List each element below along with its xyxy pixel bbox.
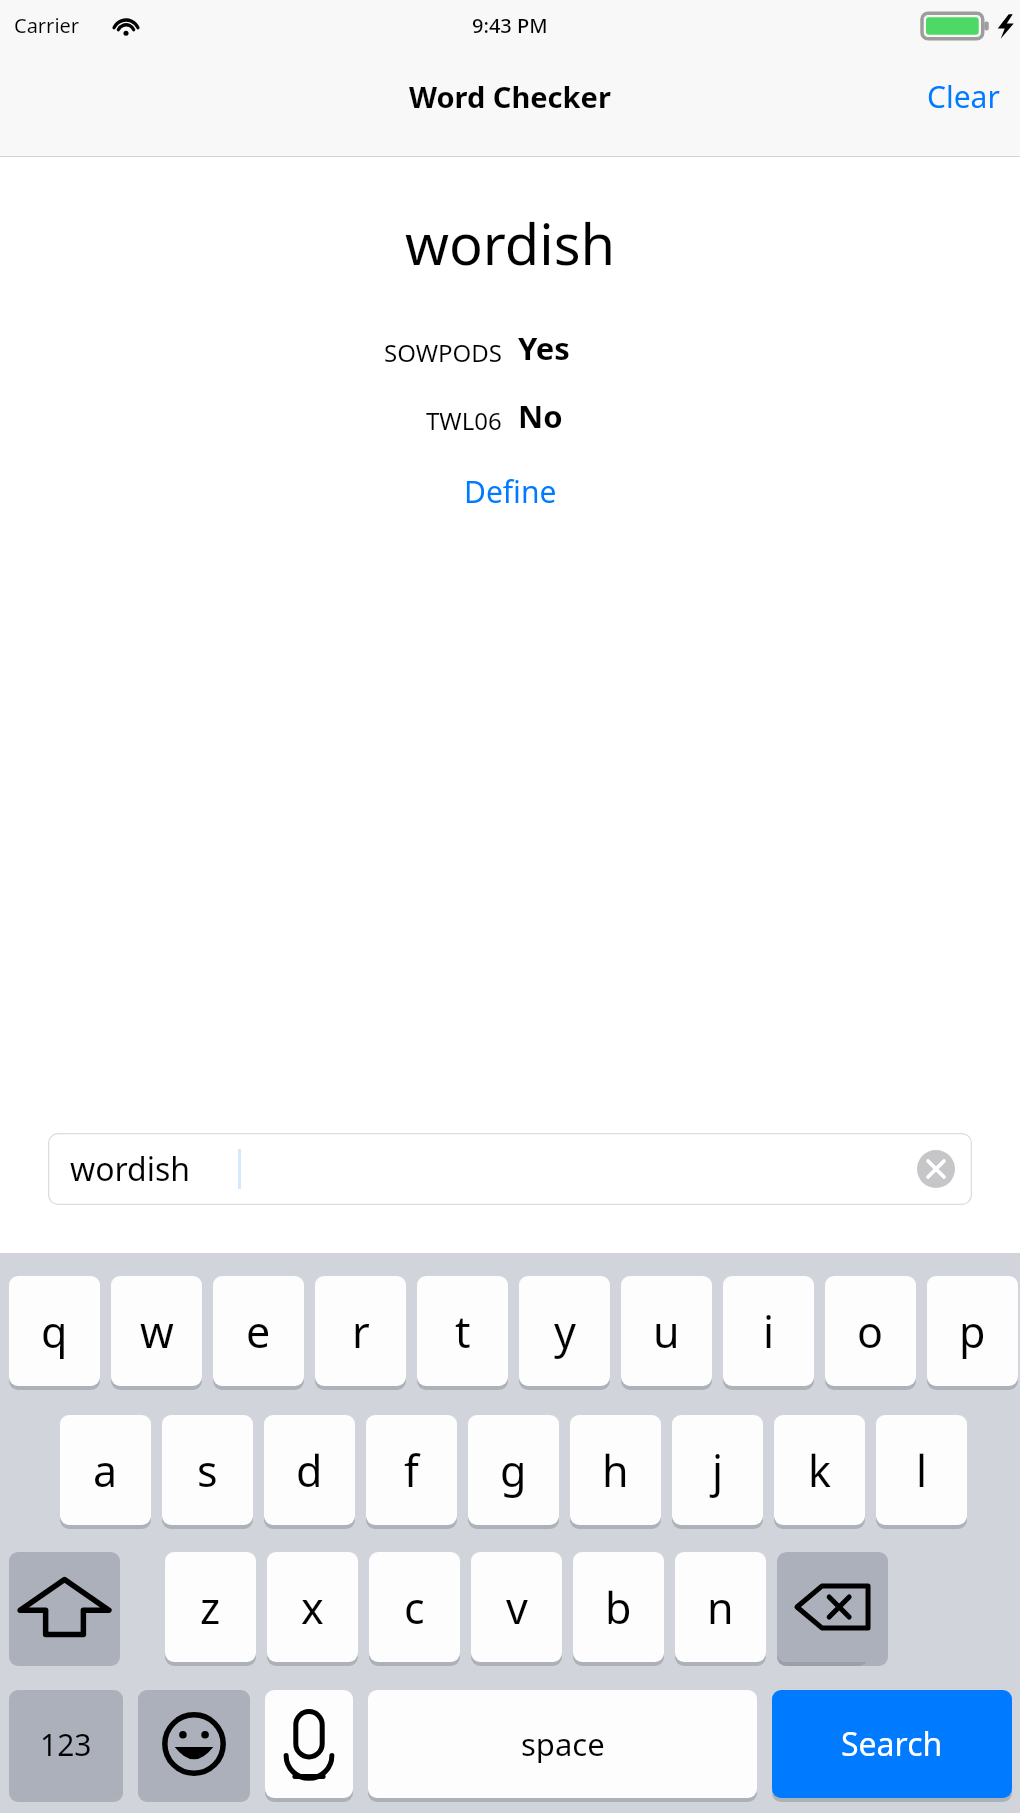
button[interactable]: Dictate (265, 1690, 353, 1798)
staticText: y (554, 1302, 576, 1361)
button[interactable]: Clear text (916, 1149, 956, 1189)
button[interactable]: 123 (9, 1690, 123, 1798)
staticText: Define (464, 471, 557, 512)
staticText: o (857, 1302, 884, 1361)
button[interactable]: q (9, 1276, 100, 1386)
staticText: x (301, 1578, 324, 1637)
staticText: m (802, 1578, 843, 1637)
staticText: 123 (40, 1724, 92, 1765)
staticText: r (352, 1302, 370, 1361)
button[interactable]: e (213, 1276, 304, 1386)
button[interactable]: v (471, 1552, 562, 1662)
button[interactable]: Backspace (777, 1552, 888, 1662)
staticText: t (455, 1302, 471, 1361)
staticText: b (605, 1578, 632, 1637)
button[interactable]: g (468, 1415, 559, 1525)
button[interactable]: t (417, 1276, 508, 1386)
button[interactable]: n (675, 1552, 766, 1662)
staticText: wordish (0, 205, 1020, 281)
staticText: Word Checker (409, 77, 611, 116)
staticText: f (404, 1441, 419, 1500)
staticText: l (916, 1441, 928, 1500)
button[interactable]: j (672, 1415, 763, 1525)
staticText: No (518, 395, 563, 437)
staticText: n (707, 1578, 734, 1637)
staticText: i (763, 1302, 775, 1361)
button[interactable]: h (570, 1415, 661, 1525)
staticText: 9:43 PM (472, 12, 548, 39)
staticText: k (808, 1441, 831, 1500)
button[interactable]: Search (772, 1690, 1012, 1798)
staticText: g (500, 1441, 527, 1500)
staticText: d (296, 1441, 323, 1500)
button[interactable]: o (825, 1276, 916, 1386)
button[interactable]: x (267, 1552, 358, 1662)
staticText: Search (841, 1722, 943, 1766)
button[interactable]: r (315, 1276, 406, 1386)
staticText: space (521, 1723, 605, 1765)
staticText: e (246, 1302, 271, 1361)
button[interactable]: m (777, 1552, 868, 1662)
staticText: h (602, 1441, 629, 1500)
staticText: a (93, 1441, 118, 1500)
staticText: Yes (518, 327, 570, 369)
staticText: q (41, 1302, 68, 1361)
staticText: p (959, 1302, 986, 1361)
staticText: w (140, 1302, 174, 1361)
staticText: SOWPODS (384, 336, 502, 369)
button[interactable]: i (723, 1276, 814, 1386)
staticText: TWL06 (426, 404, 502, 437)
staticText: Carrier (14, 12, 80, 39)
button[interactable]: y (519, 1276, 610, 1386)
button[interactable]: a (60, 1415, 151, 1525)
button[interactable]: wordish (48, 1133, 972, 1205)
button[interactable]: k (774, 1415, 865, 1525)
staticText: v (506, 1578, 528, 1637)
button[interactable]: b (573, 1552, 664, 1662)
staticText: wordish (70, 1147, 191, 1191)
button[interactable]: f (366, 1415, 457, 1525)
button[interactable]: w (111, 1276, 202, 1386)
button[interactable]: c (369, 1552, 460, 1662)
staticText: Clear (927, 76, 1000, 117)
button[interactable]: Define (438, 465, 583, 518)
button[interactable]: l (876, 1415, 967, 1525)
button[interactable]: space (368, 1690, 757, 1798)
staticText: u (653, 1302, 680, 1361)
button[interactable]: d (264, 1415, 355, 1525)
staticText: j (712, 1441, 724, 1500)
button[interactable]: u (621, 1276, 712, 1386)
button[interactable]: Clear (907, 66, 1020, 127)
button[interactable]: p (927, 1276, 1018, 1386)
staticText: z (200, 1578, 221, 1637)
button[interactable]: s (162, 1415, 253, 1525)
staticText: s (197, 1441, 218, 1500)
button[interactable]: Emoji (138, 1690, 250, 1798)
button[interactable]: Shift (9, 1552, 120, 1662)
button[interactable]: z (165, 1552, 256, 1662)
staticText: c (404, 1578, 425, 1637)
